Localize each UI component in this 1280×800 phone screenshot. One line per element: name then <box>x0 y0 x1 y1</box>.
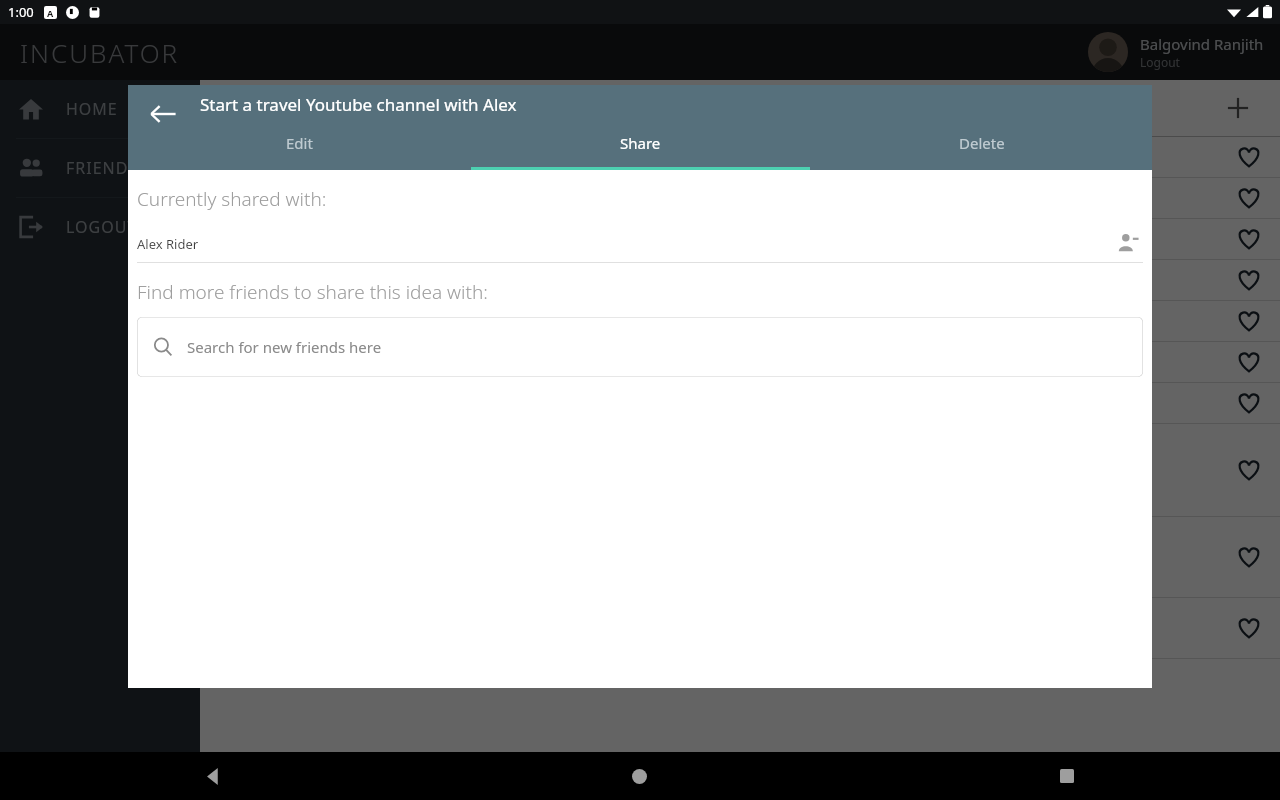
staticText: 1:00 <box>8 3 34 21</box>
staticText: Find more friends to share this idea wit… <box>137 279 488 305</box>
button[interactable] <box>200 137 1280 177</box>
button[interactable] <box>200 517 1280 597</box>
staticText: A <box>47 7 54 19</box>
staticText: Edit <box>286 133 313 153</box>
button[interactable]: LOGOUT <box>0 198 200 256</box>
button[interactable]: Edit <box>128 125 470 170</box>
button[interactable] <box>200 219 1280 259</box>
button[interactable]: Share <box>470 125 811 170</box>
staticText: Currently shared with: <box>137 186 327 212</box>
staticText: Delete <box>959 133 1005 153</box>
button[interactable]: Balgovind Ranjith <box>1088 32 1264 72</box>
button[interactable]: Add idea <box>1220 90 1256 126</box>
button[interactable]: Home <box>426 752 853 800</box>
staticText: HOME <box>66 98 118 120</box>
other: Remove person <box>1117 231 1139 257</box>
staticText: Share <box>620 133 661 153</box>
staticText: Balgovind Ranjith <box>1140 34 1264 54</box>
button[interactable]: Recents <box>853 752 1280 800</box>
staticText: Logout <box>1140 54 1180 70</box>
button[interactable]: FRIENDS <box>0 139 200 197</box>
button[interactable] <box>200 342 1280 382</box>
button[interactable]: HOME <box>0 80 200 138</box>
button[interactable] <box>200 424 1280 516</box>
staticText: LOGOUT <box>66 216 138 238</box>
staticText: INCUBATOR <box>20 35 180 70</box>
button[interactable]: Back <box>142 93 184 135</box>
staticText: Start a travel Youtube channel with Alex <box>200 93 517 116</box>
button[interactable]: Back <box>0 752 426 800</box>
button[interactable] <box>200 383 1280 423</box>
staticText: Search for new friends here <box>187 337 382 357</box>
staticText: Alex Rider <box>137 235 199 253</box>
button[interactable]: Alex Rider <box>137 226 1143 262</box>
button[interactable] <box>200 301 1280 341</box>
button[interactable] <box>200 260 1280 300</box>
button[interactable]: Search for new friends here <box>137 317 1143 377</box>
button[interactable] <box>200 178 1280 218</box>
button[interactable]: Delete <box>811 125 1152 170</box>
button[interactable] <box>200 598 1280 658</box>
staticText: FRIENDS <box>66 157 139 179</box>
